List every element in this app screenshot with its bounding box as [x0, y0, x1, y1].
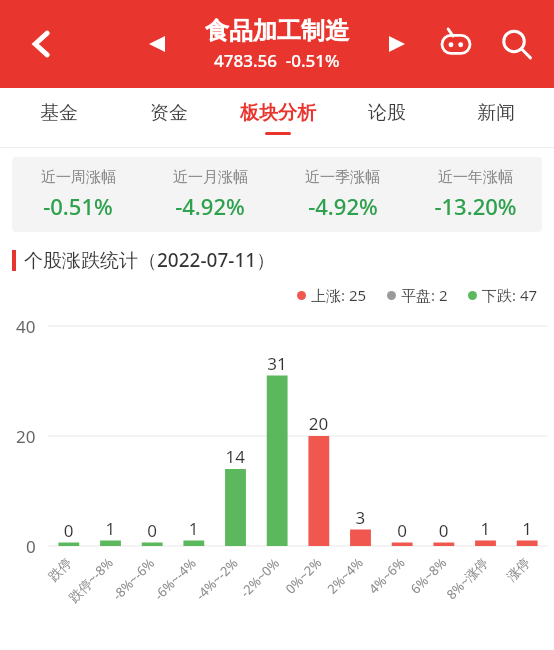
staticText: 新闻: [477, 101, 515, 125]
button[interactable]: 板块分析: [223, 88, 332, 148]
staticText: 下跌: 47: [482, 285, 538, 305]
staticText: 食品加工制造: [205, 16, 349, 46]
staticText: 板块分析: [240, 101, 316, 125]
staticText: 平盘: 2: [401, 285, 448, 305]
button[interactable]: Search: [492, 20, 540, 68]
staticText: 资金: [150, 101, 188, 125]
button[interactable]: 论股: [332, 88, 441, 148]
staticText: -13.20%: [434, 191, 517, 221]
button[interactable]: Previous sector: [137, 24, 177, 64]
staticText: 近一周涨幅: [41, 168, 116, 187]
staticText: 上涨: 25: [311, 285, 367, 305]
staticText: 4783.56 -0.51%: [214, 49, 340, 72]
button[interactable]: Back: [16, 18, 68, 70]
staticText: -0.51%: [43, 191, 113, 221]
button[interactable]: Assistant robot: [432, 20, 480, 68]
button[interactable]: Next sector: [377, 24, 417, 64]
button[interactable]: 新闻: [441, 88, 550, 148]
staticText: -4.92%: [175, 191, 245, 221]
staticText: 近一年涨幅: [438, 168, 513, 187]
staticText: 近一月涨幅: [173, 168, 248, 187]
button[interactable]: 资金: [114, 88, 223, 148]
button[interactable]: 近一年涨幅: [409, 168, 542, 221]
staticText: 基金: [40, 101, 78, 125]
staticText: 近一季涨幅: [305, 168, 380, 187]
staticText: 个股涨跌统计（2022-07-11）: [24, 247, 276, 273]
button[interactable]: 近一月涨幅: [144, 168, 276, 221]
button[interactable]: 近一周涨幅: [12, 168, 144, 221]
button[interactable]: 近一季涨幅: [276, 168, 409, 221]
staticText: -4.92%: [308, 191, 378, 221]
button[interactable]: 基金: [4, 88, 114, 148]
staticText: 论股: [368, 101, 406, 125]
